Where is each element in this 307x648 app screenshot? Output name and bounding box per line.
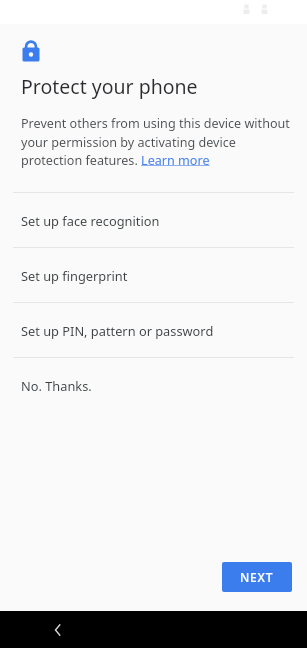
button[interactable]: NEXT [222,562,292,592]
button[interactable]: Set up fingerprint [0,248,307,302]
button[interactable]: Set up PIN, pattern or password [0,303,307,357]
staticText: Protect your phone [21,73,198,100]
staticText: Prevent others from using this device wi… [21,115,293,168]
button[interactable]: No. Thanks. [0,358,307,412]
staticText: Set up fingerprint [21,267,128,284]
button[interactable]: Set up face recognition [0,193,307,247]
button[interactable]: Back [44,616,72,644]
staticText: Set up face recognition [21,212,160,229]
staticText: NEXT [240,569,274,585]
staticText: No. Thanks. [21,377,92,394]
staticText: Set up PIN, pattern or password [21,322,214,339]
